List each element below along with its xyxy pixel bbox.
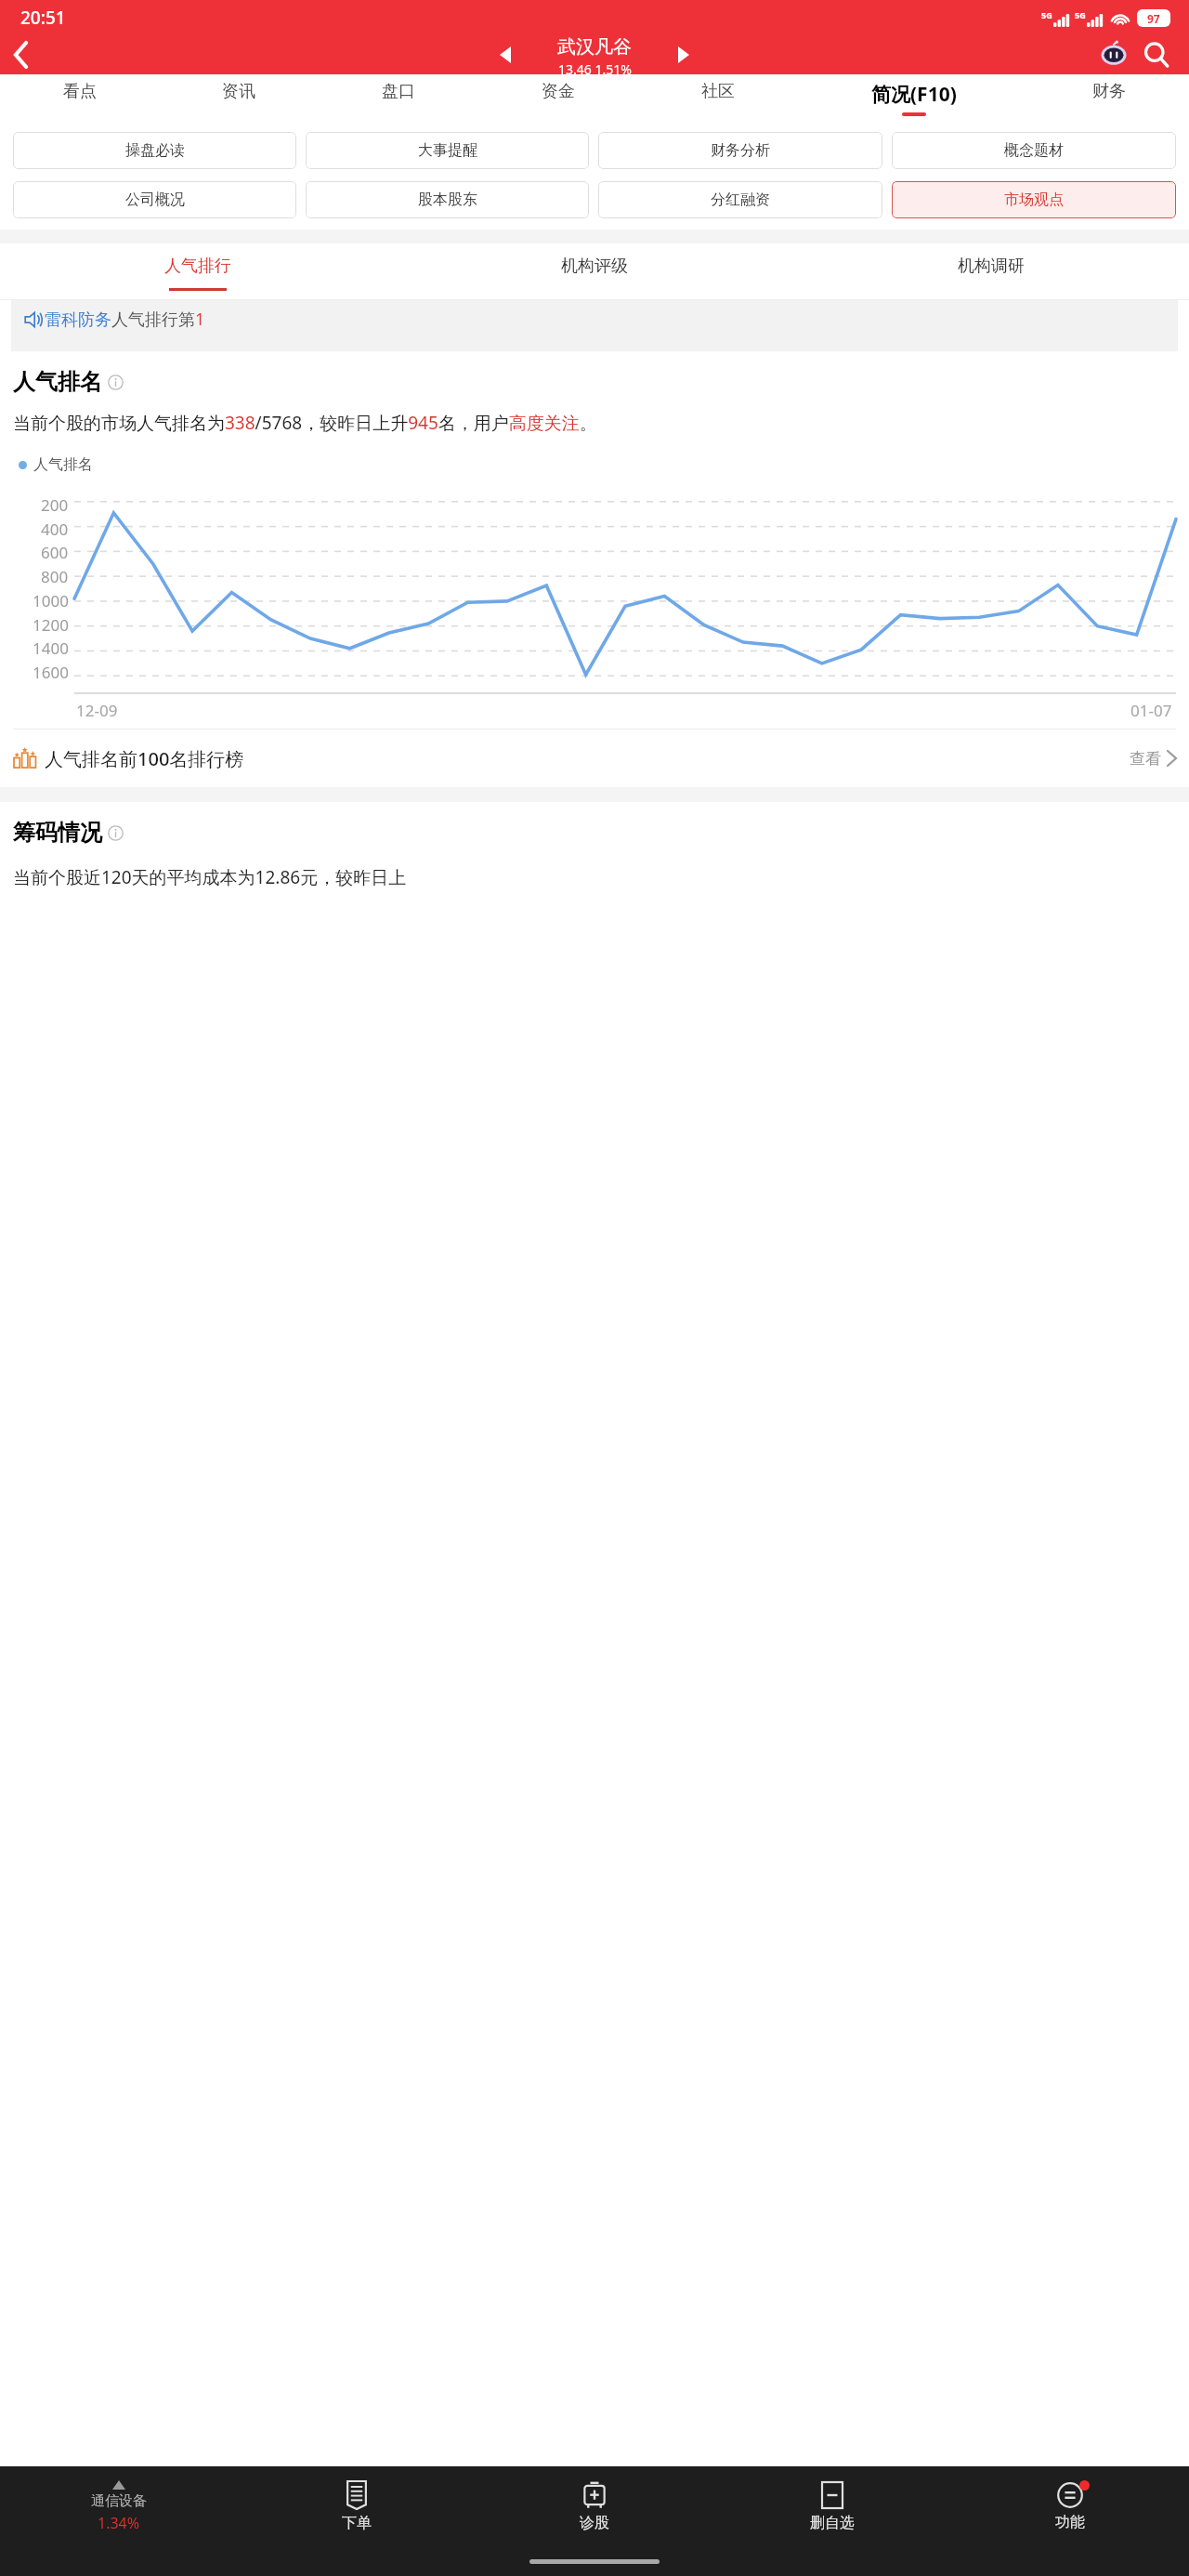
button[interactable]: 公司概况: [13, 181, 296, 218]
staticText: 财务分析: [711, 141, 770, 160]
staticText: 01-07: [1130, 700, 1172, 721]
button[interactable]: 看点: [0, 74, 159, 121]
button[interactable]: AI assistant: [1092, 35, 1135, 74]
button[interactable]: 盘口: [319, 74, 478, 121]
button[interactable]: 概念题材: [892, 132, 1176, 169]
button[interactable]: Next stock: [664, 35, 703, 74]
staticText: 资讯: [222, 81, 255, 102]
button[interactable]: 社区: [638, 74, 798, 121]
staticText: 人气排名前100名排行榜: [45, 746, 244, 771]
button[interactable]: 功能: [951, 2466, 1189, 2546]
staticText: 12-09: [76, 700, 118, 721]
staticText: 市场观点: [1004, 191, 1064, 209]
button[interactable]: 财务: [1029, 74, 1189, 121]
staticText: 雷科防务人气排行第1: [45, 308, 205, 331]
button[interactable]: Search: [1135, 35, 1178, 74]
button[interactable]: 市场观点: [892, 181, 1176, 218]
staticText: 操盘必读: [125, 141, 185, 160]
staticText: 人气排行: [164, 256, 231, 277]
staticText: 5G: [1041, 9, 1052, 20]
staticText: 人气排名: [13, 368, 102, 396]
staticText: 200: [41, 494, 69, 516]
staticText: 400: [41, 519, 69, 540]
staticText: 查看: [1130, 749, 1161, 769]
staticText: 机构调研: [958, 256, 1025, 277]
button[interactable]: 下单: [238, 2466, 476, 2546]
staticText: 分红融资: [711, 191, 770, 209]
staticText: 20:51: [20, 6, 66, 30]
staticText: 删自选: [810, 2514, 855, 2532]
staticText: 武汉凡谷: [557, 35, 632, 59]
button[interactable]: 分红融资: [598, 181, 882, 218]
staticText: 简况(F10): [871, 81, 957, 108]
staticText: 盘口: [382, 81, 415, 102]
staticText: 1200: [33, 614, 69, 636]
staticText: 1400: [33, 637, 69, 659]
staticText: 下单: [342, 2514, 372, 2532]
button[interactable]: 资讯: [159, 74, 319, 121]
staticText: 社区: [701, 81, 735, 102]
staticText: 人气排名: [33, 455, 93, 474]
button[interactable]: 诊股: [476, 2466, 713, 2546]
staticText: 诊股: [580, 2514, 609, 2532]
button[interactable]: 机构调研: [792, 243, 1189, 299]
button[interactable]: 机构评级: [396, 243, 792, 299]
button[interactable]: 大事提醒: [306, 132, 589, 169]
button[interactable]: 删自选: [713, 2466, 951, 2546]
button[interactable]: Previous stock: [486, 35, 525, 74]
button[interactable]: 股本股东: [306, 181, 589, 218]
staticText: 1000: [33, 590, 69, 611]
staticText: 大事提醒: [418, 141, 477, 160]
button[interactable]: 人气排行: [0, 243, 396, 299]
staticText: 1600: [33, 662, 69, 683]
button[interactable]: 财务分析: [598, 132, 882, 169]
staticText: 13.46 1.51%: [558, 60, 632, 74]
button[interactable]: 人气排名前100名排行榜: [13, 729, 1176, 787]
staticText: 当前个股的市场人气排名为338/5768，较昨日上升945名，用户高度关注。: [13, 411, 597, 435]
staticText: 筹码情况: [13, 819, 102, 847]
staticText: 资金: [542, 81, 575, 102]
staticText: 概念题材: [1004, 141, 1064, 160]
staticText: 看点: [63, 81, 97, 102]
staticText: 通信设备: [91, 2492, 147, 2510]
button[interactable]: 操盘必读: [13, 132, 296, 169]
staticText: 公司概况: [125, 191, 185, 209]
staticText: 97: [1147, 11, 1160, 26]
button[interactable]: 简况(F10): [798, 74, 1029, 121]
button[interactable]: 通信设备: [0, 2466, 238, 2546]
button[interactable]: 雷科防务人气排行第1: [11, 300, 1178, 351]
button[interactable]: 资金: [478, 74, 638, 121]
staticText: 1.34%: [98, 2513, 140, 2533]
staticText: 功能: [1055, 2513, 1085, 2531]
staticText: 股本股东: [418, 191, 477, 209]
staticText: 600: [41, 542, 69, 563]
staticText: 财务: [1092, 81, 1126, 102]
staticText: 当前个股近120天的平均成本为12.86元，较昨日上: [13, 865, 407, 889]
button[interactable]: Back: [0, 35, 43, 74]
staticText: 机构评级: [561, 256, 628, 277]
staticText: 800: [41, 566, 69, 587]
staticText: 5G: [1075, 9, 1086, 20]
